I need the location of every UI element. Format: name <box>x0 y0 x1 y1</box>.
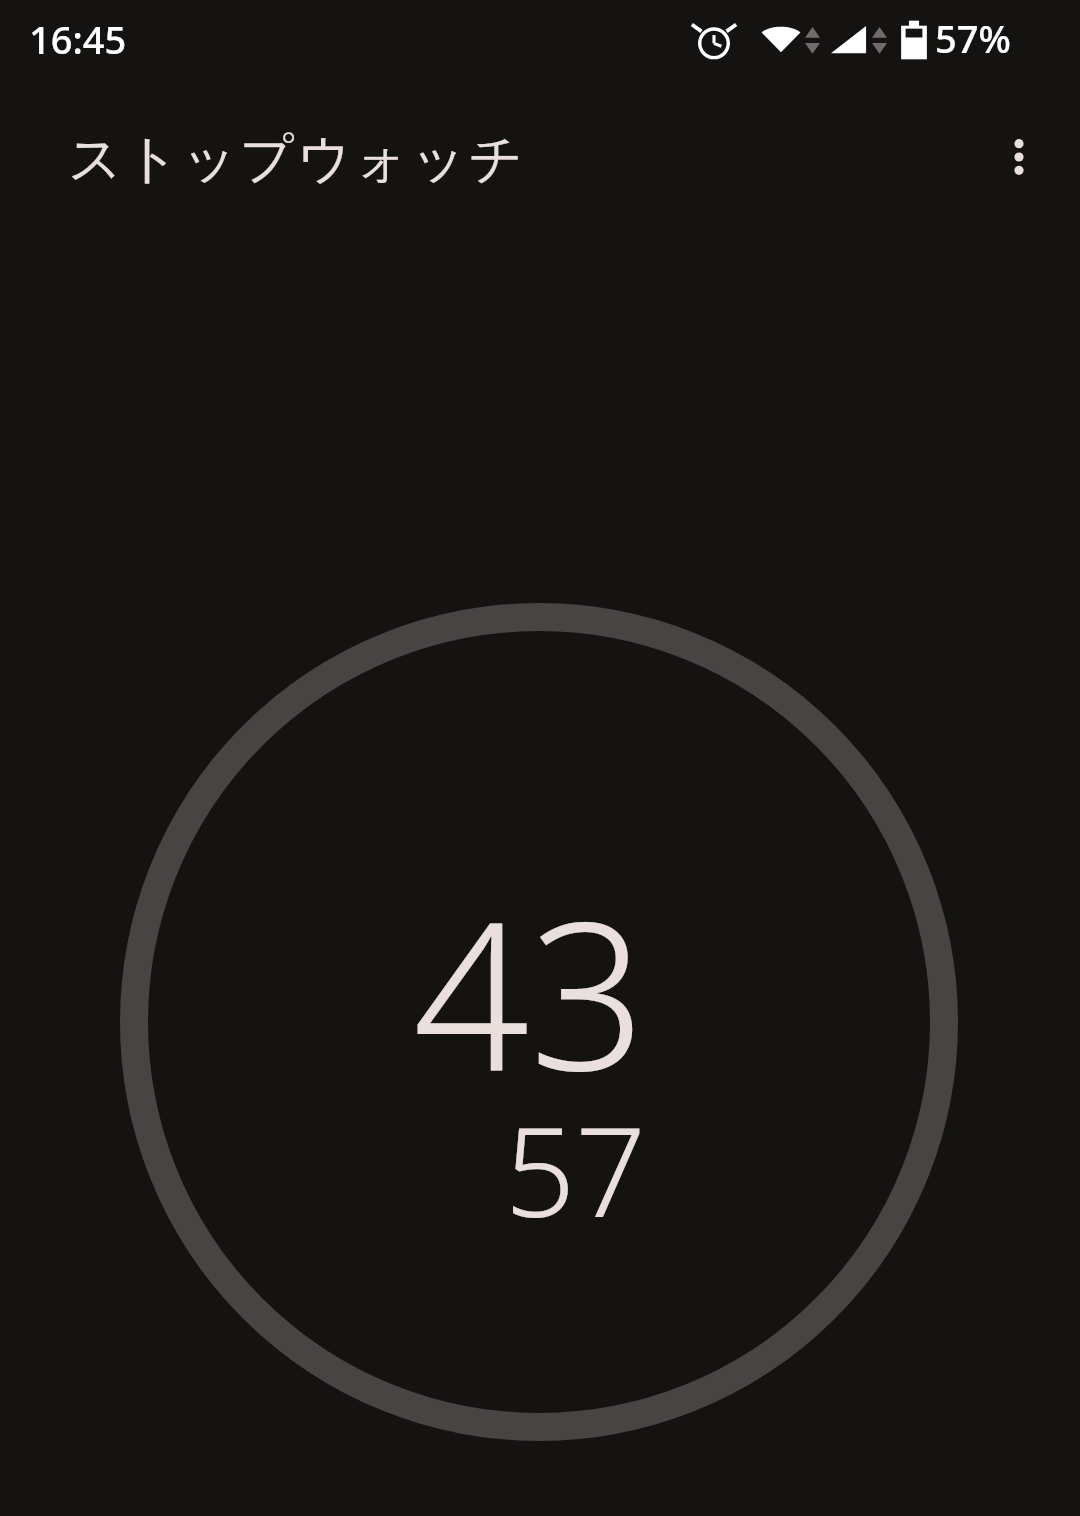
staticText: 16:45 <box>29 13 127 65</box>
button[interactable]: Stopwatch, tap to start or stop <box>0 0 1080 1516</box>
button[interactable]: More options <box>979 117 1059 197</box>
staticText: 57 <box>504 1084 646 1253</box>
staticText: 43 <box>413 852 646 1130</box>
staticText: ストップウォッチ <box>68 126 526 193</box>
staticText: 57% <box>935 12 1011 64</box>
